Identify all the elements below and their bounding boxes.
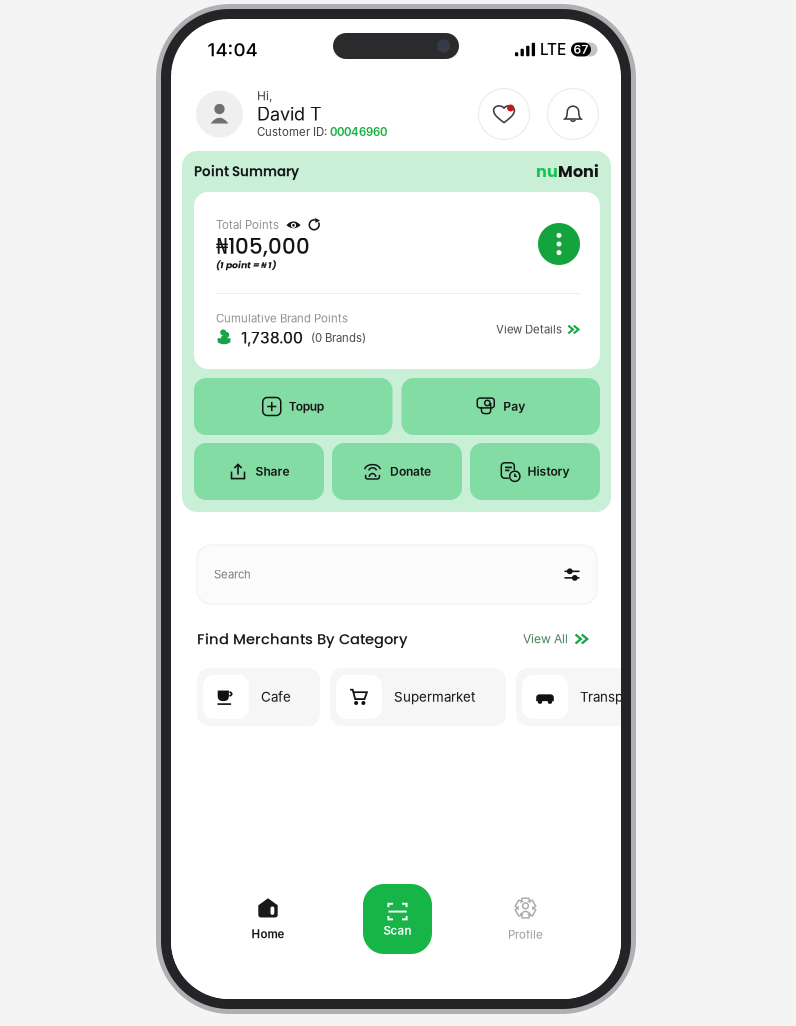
staticText: Profile xyxy=(508,928,543,941)
button[interactable]: Pay xyxy=(401,378,600,435)
staticText: Home xyxy=(251,927,284,941)
staticText: Topup xyxy=(289,399,324,414)
staticText: Cumulative Brand Points xyxy=(216,312,348,325)
button[interactable]: View All xyxy=(523,631,589,646)
staticText: (0 Brands) xyxy=(311,331,366,345)
button[interactable]: Topup xyxy=(194,378,392,435)
staticText: Customer ID: xyxy=(257,125,330,139)
staticText: 14:04 xyxy=(207,38,257,61)
staticText: Search xyxy=(214,568,251,581)
staticText: 67 xyxy=(573,42,588,57)
staticText: (1 point = ₦ 1) xyxy=(216,258,276,272)
staticText: 1,738.00 xyxy=(241,329,303,347)
button[interactable]: Profile xyxy=(430,884,621,954)
staticText: Point Summary xyxy=(194,162,299,181)
staticText: Share xyxy=(255,464,289,479)
button[interactable]: Favourites xyxy=(478,88,530,140)
staticText: Moni xyxy=(558,160,599,183)
button[interactable]: Supermarket xyxy=(330,668,506,726)
staticText: Find Merchants By Category xyxy=(197,629,408,649)
staticText: Pay xyxy=(503,399,525,414)
button[interactable]: Donate xyxy=(332,443,462,500)
button[interactable]: Transport xyxy=(516,668,666,726)
staticText: History xyxy=(527,464,569,479)
button[interactable]: Scan xyxy=(363,884,432,954)
button[interactable]: History xyxy=(470,443,600,500)
staticText: Donate xyxy=(390,464,431,479)
button[interactable]: Cafe xyxy=(197,668,320,726)
staticText: Supermarket xyxy=(394,689,475,705)
staticText: nu xyxy=(536,160,558,183)
button[interactable]: View Details xyxy=(496,323,580,336)
staticText: Hi, xyxy=(257,89,272,103)
staticText: LTE xyxy=(540,40,566,59)
staticText: Total Points xyxy=(216,218,279,232)
button[interactable]: Hi, xyxy=(196,88,387,139)
button[interactable]: Share xyxy=(194,443,324,500)
button[interactable]: Notifications xyxy=(547,88,599,140)
button[interactable]: More options xyxy=(538,223,580,265)
button[interactable]: Home xyxy=(171,884,365,954)
staticText: View Details xyxy=(496,323,562,336)
staticText: View All xyxy=(523,632,568,646)
staticText: 00046960 xyxy=(330,125,387,139)
staticText: ₦105,000 xyxy=(216,231,310,261)
button[interactable]: Search xyxy=(197,545,597,604)
staticText: Cafe xyxy=(261,689,291,705)
staticText: David T xyxy=(257,103,322,125)
staticText: Transport xyxy=(580,689,640,705)
staticText: Scan xyxy=(383,924,411,937)
